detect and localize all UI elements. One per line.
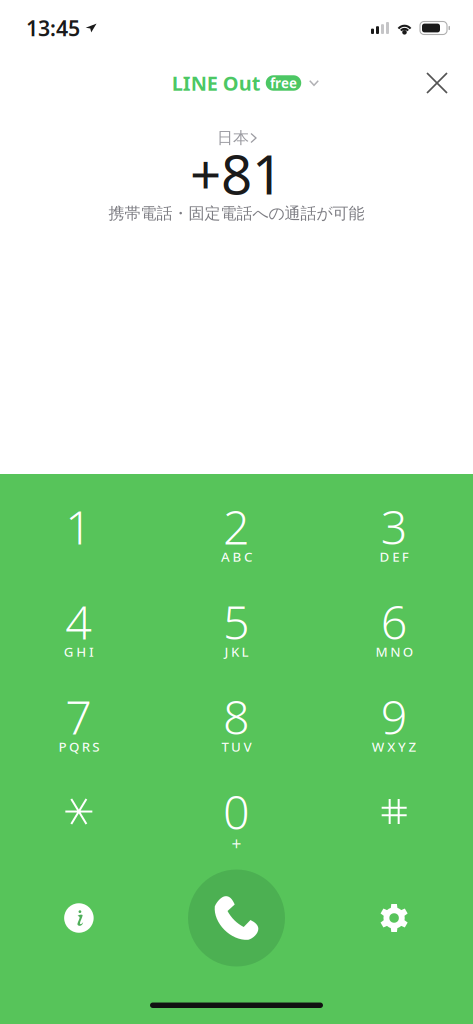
button[interactable]: 7 <box>0 677 158 772</box>
button[interactable]: Close <box>415 61 459 105</box>
button[interactable]: 5 <box>158 582 315 677</box>
staticText: 携帯電話・固定電話への通話が可能 <box>108 204 364 223</box>
staticText: 0 <box>223 780 250 842</box>
staticText: ABC <box>221 548 252 565</box>
button[interactable]: 1 <box>0 487 158 582</box>
staticText: 4 <box>65 590 92 652</box>
staticText: 9 <box>381 685 408 747</box>
staticText: +81 <box>190 137 283 210</box>
button[interactable]: 4 <box>0 582 158 677</box>
button[interactable]: Star <box>0 772 158 867</box>
staticText: 6 <box>381 590 408 652</box>
button[interactable]: LINE Out <box>172 70 301 96</box>
staticText: 7 <box>65 685 92 747</box>
button[interactable]: 日本 <box>217 129 256 147</box>
staticText: 3 <box>381 495 408 557</box>
staticText: LINE Out <box>172 70 261 96</box>
button[interactable]: 2 <box>158 487 315 582</box>
button[interactable]: 6 <box>315 582 473 677</box>
staticText: 13:45 <box>26 14 80 42</box>
staticText: 日本 <box>217 128 249 148</box>
button[interactable]: 8 <box>158 677 315 772</box>
button[interactable]: Info <box>0 867 158 969</box>
staticText: PQRS <box>58 738 99 755</box>
staticText: + <box>231 832 241 855</box>
button[interactable]: 0 <box>158 772 315 867</box>
staticText: MNO <box>376 643 413 660</box>
staticText: DEF <box>380 548 409 565</box>
staticText: TUV <box>221 738 252 755</box>
staticText: WXYZ <box>372 738 417 755</box>
staticText: JKL <box>224 643 249 660</box>
button[interactable]: 3 <box>315 487 473 582</box>
staticText: GHI <box>64 643 94 660</box>
button[interactable]: Call <box>158 867 315 969</box>
button[interactable]: 9 <box>315 677 473 772</box>
staticText: free <box>270 74 297 92</box>
button[interactable]: Pound <box>315 772 473 867</box>
button[interactable]: Settings <box>315 867 473 969</box>
staticText: 8 <box>223 685 250 747</box>
staticText: 5 <box>223 590 250 652</box>
staticText: 1 <box>65 495 92 557</box>
staticText: 2 <box>223 495 250 557</box>
